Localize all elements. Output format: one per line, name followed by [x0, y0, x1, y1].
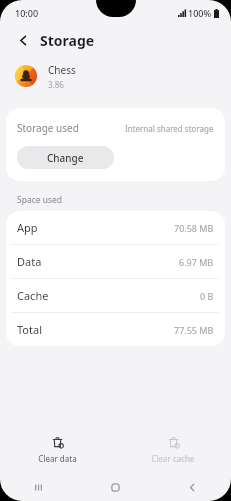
staticText: 6.97 MB	[179, 256, 214, 268]
staticText: Clear cache	[151, 453, 195, 464]
staticText: Chess	[48, 63, 76, 77]
button[interactable]: Cache	[6, 279, 225, 312]
staticText: Clear data	[38, 453, 77, 464]
staticText: Data	[17, 254, 42, 269]
button[interactable]: Home	[77, 473, 154, 501]
staticText: Storage used	[17, 121, 79, 135]
staticText: 0 B	[200, 290, 214, 302]
button[interactable]: Clear data	[0, 436, 115, 464]
staticText: 10:00	[15, 7, 39, 19]
staticText: 70.58 MB	[174, 222, 214, 234]
button[interactable]: Back	[13, 30, 33, 50]
staticText: 3.86	[48, 79, 64, 90]
staticText: Cache	[17, 288, 49, 303]
staticText: 100%	[188, 7, 212, 19]
button[interactable]: Recent apps	[0, 473, 77, 501]
staticText: Storage	[40, 31, 95, 50]
button[interactable]: Data	[6, 245, 225, 278]
staticText: Space used	[17, 194, 63, 206]
button[interactable]: Back	[154, 473, 231, 501]
button[interactable]: App	[6, 211, 225, 244]
button[interactable]: Total	[6, 313, 225, 346]
staticText: 77.55 MB	[174, 324, 214, 336]
staticText: App	[17, 220, 38, 235]
button[interactable]: Change	[17, 146, 114, 169]
staticText: Internal shared storage	[125, 123, 214, 134]
staticText: Total	[17, 322, 42, 337]
button[interactable]: Clear cache	[115, 436, 231, 464]
staticText: Change	[47, 151, 84, 165]
